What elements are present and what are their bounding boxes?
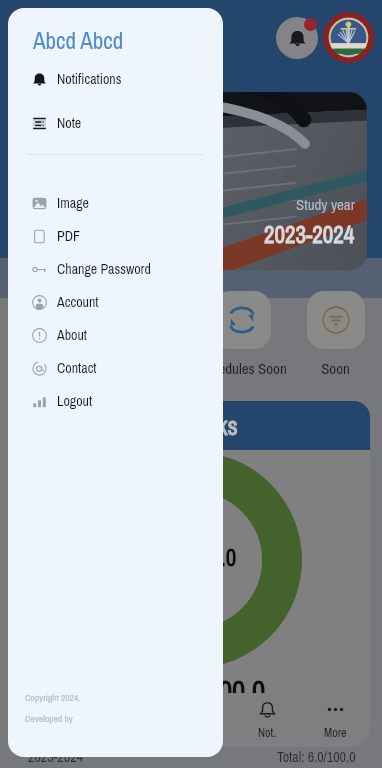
staticText: Soon <box>37 358 66 378</box>
staticText: Notifications <box>57 70 122 89</box>
staticText: 6.0 <box>210 542 237 573</box>
staticText: About <box>57 326 88 345</box>
button[interactable]: Study year <box>15 92 367 270</box>
staticText: 2023-2024 <box>264 219 355 250</box>
staticText: Copyright 2024. <box>25 691 81 704</box>
button[interactable]: Cal. <box>166 693 232 747</box>
staticText: Total: 6.0/100.0 <box>277 748 356 767</box>
button[interactable]: Image <box>8 187 223 220</box>
button[interactable]: Notifications <box>276 17 318 59</box>
button[interactable]: More <box>302 693 368 747</box>
staticText: Change Password <box>57 260 151 279</box>
button[interactable] <box>213 291 271 349</box>
button[interactable]: About <box>8 319 223 352</box>
staticText: Schedules Soon <box>197 358 287 378</box>
staticText: Note <box>57 114 82 133</box>
staticText: Developed by <box>25 712 73 725</box>
button[interactable]: Change Password <box>8 253 223 286</box>
button[interactable]: Note <box>8 101 223 145</box>
button[interactable] <box>23 291 81 349</box>
staticText: Account <box>57 293 99 312</box>
staticText: Logout <box>57 392 93 411</box>
staticText: More <box>324 725 347 741</box>
button[interactable]: Contact <box>8 352 223 385</box>
staticText: 2023-2024 <box>28 748 83 767</box>
staticText: Abcd Abcd <box>33 25 124 53</box>
button[interactable]: Logout <box>8 385 223 418</box>
staticText: Soon <box>321 358 350 378</box>
button[interactable] <box>307 291 365 349</box>
staticText: Image <box>57 194 89 213</box>
staticText: PDF <box>57 227 80 246</box>
button[interactable]: College of Medicine logo <box>323 12 374 63</box>
staticText: Study year <box>296 194 355 214</box>
staticText: Contact <box>57 359 97 378</box>
button[interactable]: Notifications <box>8 57 223 101</box>
button[interactable]: Hom. <box>29 693 95 747</box>
button[interactable]: Not. <box>234 693 300 747</box>
staticText: 6.0/100.0 <box>166 671 266 710</box>
button[interactable]: PDF <box>8 220 223 253</box>
staticText: Marks <box>182 409 238 443</box>
staticText: Not. <box>258 725 277 741</box>
button[interactable]: Account <box>8 286 223 319</box>
